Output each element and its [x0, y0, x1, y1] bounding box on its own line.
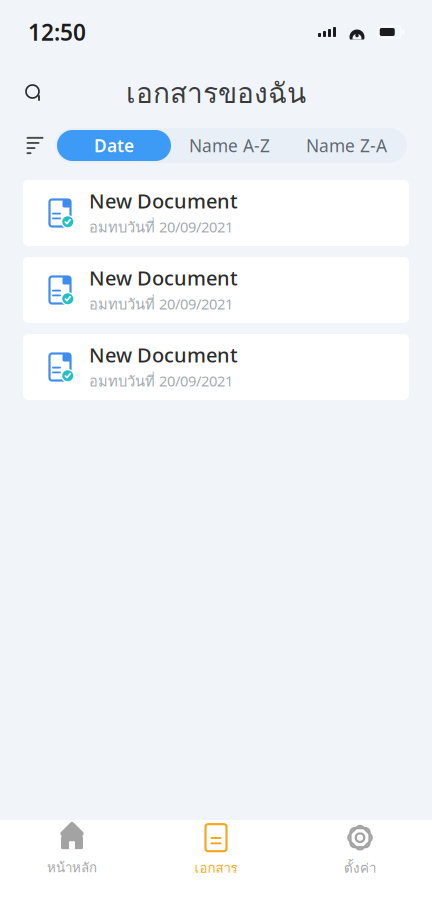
button[interactable]: Search	[14, 73, 54, 113]
button[interactable]: New Document	[23, 257, 409, 323]
staticText: New Document	[89, 187, 238, 214]
staticText: Name Z-A	[306, 134, 387, 157]
button[interactable]: Date	[57, 130, 171, 161]
button[interactable]: Name A-Z	[171, 130, 288, 161]
staticText: อมทบวันที่ 20/09/2021	[89, 293, 233, 316]
button[interactable]: New Document	[23, 180, 409, 246]
staticText: 12:50	[28, 17, 86, 47]
button[interactable]: Name Z-A	[288, 130, 405, 161]
staticText: อมทบวันที่ 20/09/2021	[89, 216, 233, 239]
staticText: New Document	[89, 341, 238, 368]
staticText: New Document	[89, 264, 238, 291]
staticText: ตั้งค่า	[344, 858, 376, 878]
staticText: Name A-Z	[189, 134, 270, 157]
staticText: เอกสาร	[194, 858, 237, 878]
button[interactable]: Sort options	[15, 128, 55, 162]
button[interactable]: หน้าหลัก	[0, 820, 144, 882]
staticText: เอกสารของฉัน	[126, 71, 306, 115]
staticText: หน้าหลัก	[47, 857, 97, 878]
staticText: อมทบวันที่ 20/09/2021	[89, 370, 233, 393]
staticText: Date	[94, 134, 134, 157]
button[interactable]: ตั้งค่า	[288, 820, 432, 882]
button[interactable]: New Document	[23, 334, 409, 400]
button[interactable]: เอกสาร	[144, 820, 288, 882]
